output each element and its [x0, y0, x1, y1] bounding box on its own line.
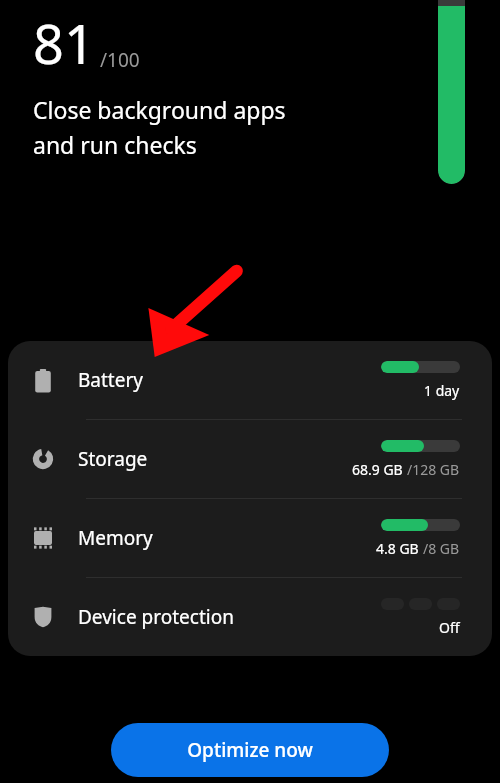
staticText: 81	[33, 6, 95, 80]
staticText: /8 GB	[423, 539, 460, 558]
staticText: /128 GB	[407, 460, 460, 479]
staticText: 4.8 GB	[376, 539, 423, 558]
button[interactable]: Optimize now	[111, 723, 389, 777]
staticText: Off	[439, 618, 460, 637]
staticText: /100	[100, 47, 140, 73]
staticText: 1 day	[424, 381, 460, 400]
staticText: 68.9 GB	[352, 460, 407, 479]
button[interactable]: Device protection	[8, 578, 492, 656]
button[interactable]: Battery	[8, 341, 492, 419]
staticText: Storage	[78, 446, 148, 472]
staticText: Close background apps	[33, 94, 286, 125]
button[interactable]: Memory	[8, 499, 492, 577]
other: Annotation arrow	[140, 263, 245, 363]
staticText: Memory	[78, 525, 153, 551]
staticText: Battery	[78, 367, 143, 393]
button[interactable]: Storage	[8, 420, 492, 498]
staticText: and run checks	[33, 129, 197, 160]
staticText: Device protection	[78, 604, 234, 630]
staticText: Optimize now	[187, 737, 313, 763]
